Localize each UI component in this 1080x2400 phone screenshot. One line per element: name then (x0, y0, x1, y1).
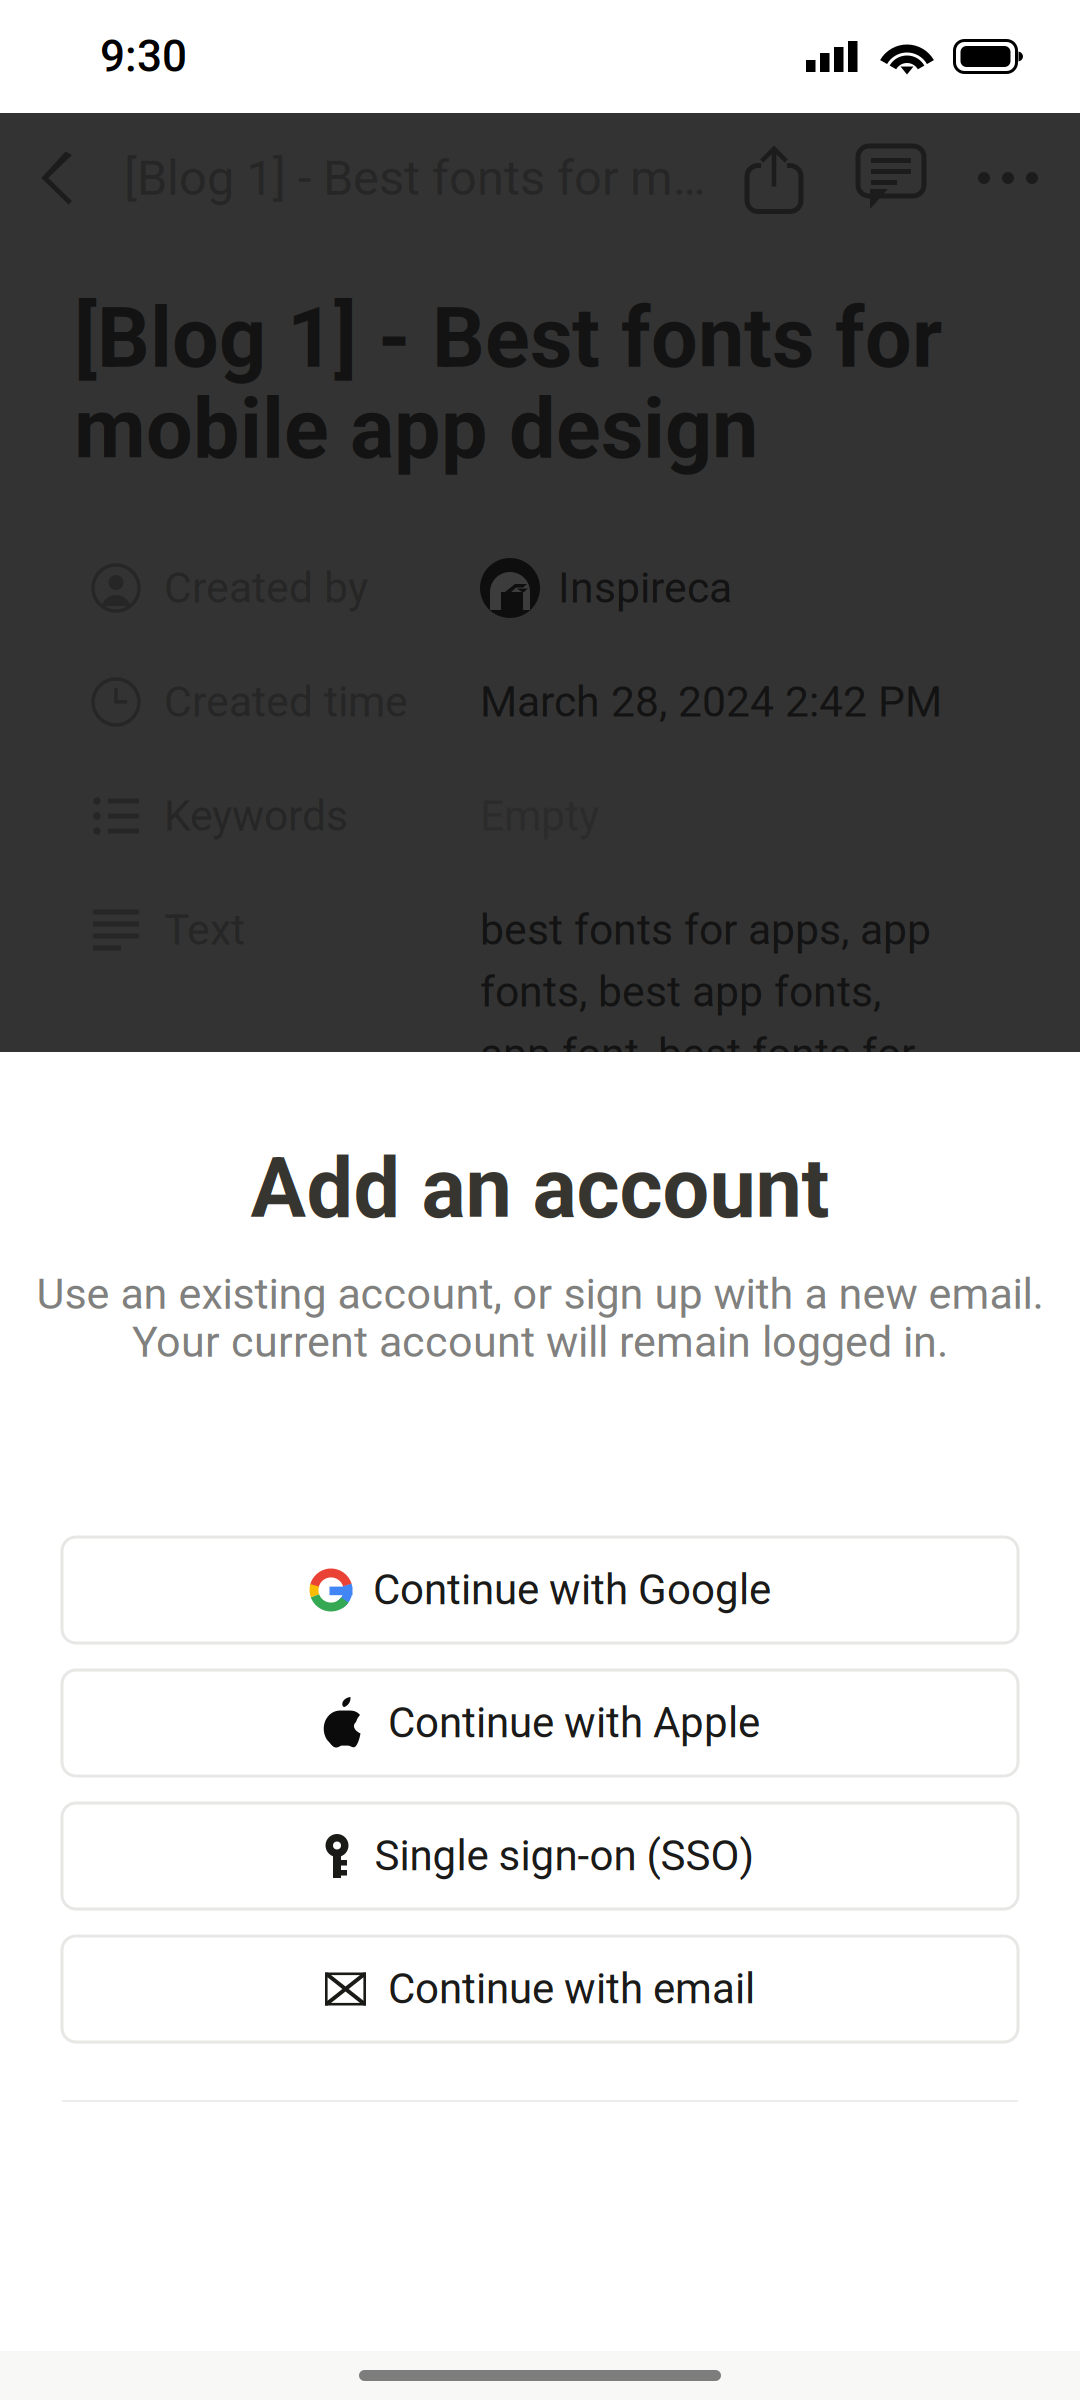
staticText: Continue with Apple (388, 1698, 760, 1748)
button[interactable]: Continue with Google (62, 1537, 1018, 1643)
button[interactable]: Continue with Apple (62, 1670, 1018, 1776)
button[interactable]: More options (956, 113, 1060, 243)
staticText: Continue with Google (373, 1565, 771, 1615)
button[interactable]: Back (0, 113, 124, 243)
button[interactable]: Share (738, 113, 854, 243)
staticText: app font, best fonts for (480, 1029, 915, 1079)
staticText: Single sign-on (SSO) (374, 1831, 754, 1881)
staticText: Continue with email (388, 1964, 755, 2014)
staticText: 9:30 (100, 31, 187, 82)
staticText: Add an account (250, 1141, 829, 1237)
staticText: Inspireca (558, 563, 732, 613)
staticText: Empty (480, 791, 599, 841)
staticText: Your current account will remain logged … (132, 1317, 948, 1367)
staticText: Use an existing account, or sign up with… (36, 1269, 1043, 1319)
button[interactable]: Comments (854, 113, 956, 243)
staticText: Created time (164, 677, 408, 727)
staticText: Keywords (164, 791, 348, 841)
button[interactable]: Single sign-on (SSO) (62, 1803, 1018, 1909)
staticText: [Blog 1] - Best fonts for (74, 290, 942, 387)
staticText: best fonts for apps, app (480, 905, 931, 955)
staticText: [Blog 1] - Best fonts for m… (124, 149, 706, 206)
staticText: Created by (164, 563, 368, 613)
button[interactable]: Continue with email (62, 1936, 1018, 2042)
staticText: March 28, 2024 2:42 PM (480, 677, 942, 727)
staticText: fonts, best app fonts, (480, 967, 881, 1017)
staticText: mobile app design (74, 381, 758, 478)
staticText: Text (164, 905, 245, 955)
